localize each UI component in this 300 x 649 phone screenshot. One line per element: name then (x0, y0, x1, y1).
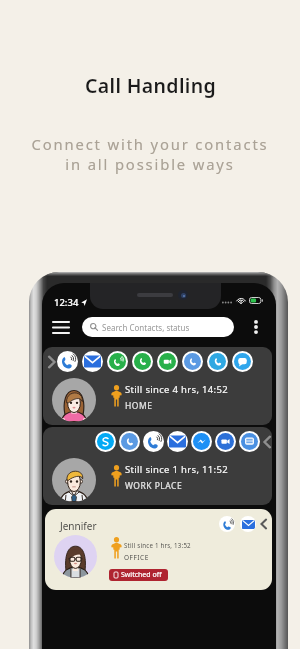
button[interactable]: Skype (43, 427, 272, 505)
staticText: HOME (125, 400, 153, 412)
button[interactable]: Messenger (191, 431, 212, 452)
button[interactable]: Jennifer (60, 519, 97, 533)
button[interactable]: More options (246, 314, 266, 340)
staticText: Jennifer (60, 519, 97, 533)
button[interactable]: Mail (240, 516, 256, 532)
button[interactable]: PhoneRing (57, 351, 78, 372)
staticText: WORK PLACE (125, 480, 183, 492)
button[interactable]: Jennifer (45, 509, 272, 590)
button[interactable]: Chat2 (239, 431, 260, 452)
button[interactable]: PhoneRing (219, 516, 235, 532)
staticText: Switched off (121, 570, 162, 580)
button[interactable]: PhoneRing (43, 347, 272, 425)
button[interactable]: Telegram (207, 351, 228, 372)
staticText: Still since 4 hrs, 14:52 (125, 383, 228, 396)
button[interactable]: PhoneRing (143, 431, 164, 452)
button[interactable]: WhatsAppCall (107, 351, 128, 372)
button[interactable]: ViberCall (182, 351, 203, 372)
staticText: 12:34 (54, 296, 79, 309)
button[interactable]: WhatsAppVideo (157, 351, 178, 372)
staticText: OFFICE (124, 553, 149, 562)
button[interactable]: Mail (82, 351, 103, 372)
staticText: Search Contacts, status (102, 322, 190, 333)
staticText: Still since 1 hrs, 13:52 (124, 541, 191, 549)
staticText: Call Handling (85, 72, 216, 99)
button[interactable]: Chat (232, 351, 253, 372)
staticText: Still since 1 hrs, 11:52 (125, 463, 228, 476)
button[interactable]: Mail (167, 431, 188, 452)
button[interactable]: WhatsApp (132, 351, 153, 372)
button[interactable]: VideoCam (215, 431, 236, 452)
button[interactable]: Skype (95, 431, 116, 452)
button[interactable]: Switched off (109, 569, 168, 581)
button[interactable]: Search Contacts, status (82, 317, 234, 337)
button[interactable]: Menu (47, 314, 74, 340)
staticText: Connect with your contacts in all possib… (31, 134, 269, 175)
button[interactable]: ViberCall (119, 431, 140, 452)
